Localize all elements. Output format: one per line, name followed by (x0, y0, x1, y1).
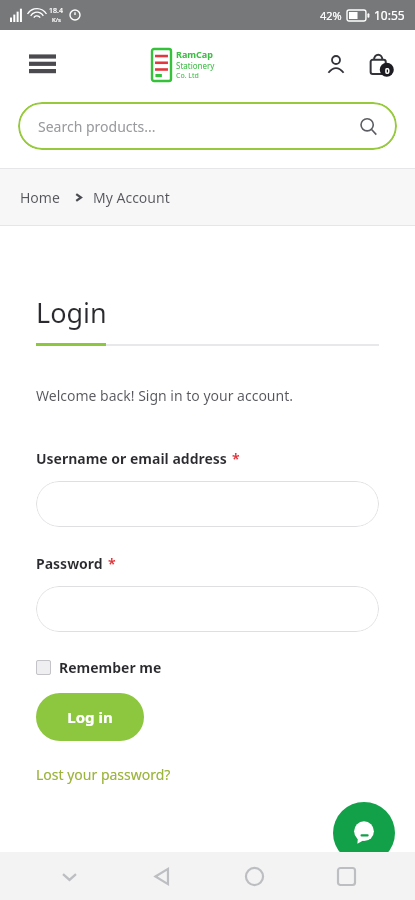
button[interactable]: Cart (361, 45, 399, 83)
staticText: Remember me (59, 658, 162, 677)
staticText: 10:55 (374, 7, 405, 23)
staticText: Home (20, 188, 60, 207)
staticText: Welcome back! Sign in to your account. (36, 386, 293, 405)
staticText: K/s (52, 16, 61, 24)
button[interactable] (36, 481, 379, 527)
staticText: Login (36, 294, 107, 331)
button[interactable]: My Account (319, 47, 353, 81)
staticText: 0 (385, 65, 390, 76)
staticText: * (108, 554, 116, 573)
staticText: Password (36, 554, 103, 573)
staticText: Lost your password? (36, 765, 171, 784)
button[interactable]: Menu (24, 46, 60, 82)
button[interactable]: Lost your password? (36, 763, 171, 786)
staticText: Co. Ltd (176, 71, 199, 81)
staticText: 42% (320, 8, 342, 23)
staticText: Username or email address (36, 449, 227, 468)
staticText: Stationery (176, 60, 215, 71)
staticText: 18.4 (49, 6, 63, 16)
button[interactable]: Remember me (36, 656, 162, 679)
staticText: * (232, 449, 240, 468)
button[interactable]: Home (231, 853, 277, 899)
button[interactable]: Back (138, 853, 184, 899)
button[interactable]: Search products... (18, 102, 397, 150)
staticText: My Account (93, 188, 170, 207)
button[interactable]: Hide keyboard (46, 853, 92, 899)
staticText: Log in (67, 707, 113, 727)
staticText: Search products... (38, 117, 156, 136)
button[interactable]: Log in (36, 693, 144, 741)
button[interactable]: Chat (333, 802, 395, 864)
staticText: RamCap (176, 48, 213, 60)
button[interactable]: Home (16, 184, 64, 211)
button[interactable] (36, 586, 379, 632)
button[interactable]: Recent apps (323, 853, 369, 899)
